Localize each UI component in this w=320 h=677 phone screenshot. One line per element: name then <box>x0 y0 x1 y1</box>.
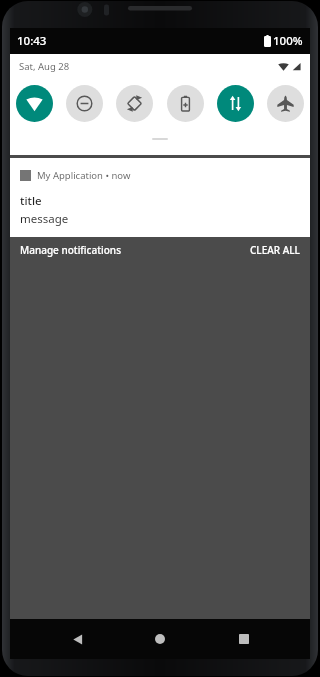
staticText: My Application • now <box>37 169 131 182</box>
button[interactable]: CLEAR ALL <box>250 243 300 257</box>
button[interactable]: Auto rotate <box>116 85 153 122</box>
button[interactable]: Back <box>60 622 94 656</box>
staticText: message <box>20 211 69 227</box>
button[interactable]: Recent apps <box>227 622 261 656</box>
button[interactable]: Home <box>143 622 177 656</box>
staticText: title <box>20 193 42 209</box>
button[interactable]: Manage notifications <box>20 243 121 257</box>
staticText: CLEAR ALL <box>250 243 300 257</box>
button[interactable]: Battery saver <box>167 85 204 122</box>
staticText: 100% <box>273 33 303 49</box>
button[interactable]: Sat, Aug 28 <box>19 60 70 73</box>
button[interactable]: Airplane mode <box>267 85 304 122</box>
staticText: Manage notifications <box>20 243 121 257</box>
button[interactable]: Do not disturb <box>66 85 103 122</box>
button[interactable]: My Application • now <box>10 158 310 237</box>
staticText: 10:43 <box>17 33 47 49</box>
button[interactable]: Mobile data <box>217 85 254 122</box>
button[interactable]: Wi-Fi <box>16 85 53 122</box>
